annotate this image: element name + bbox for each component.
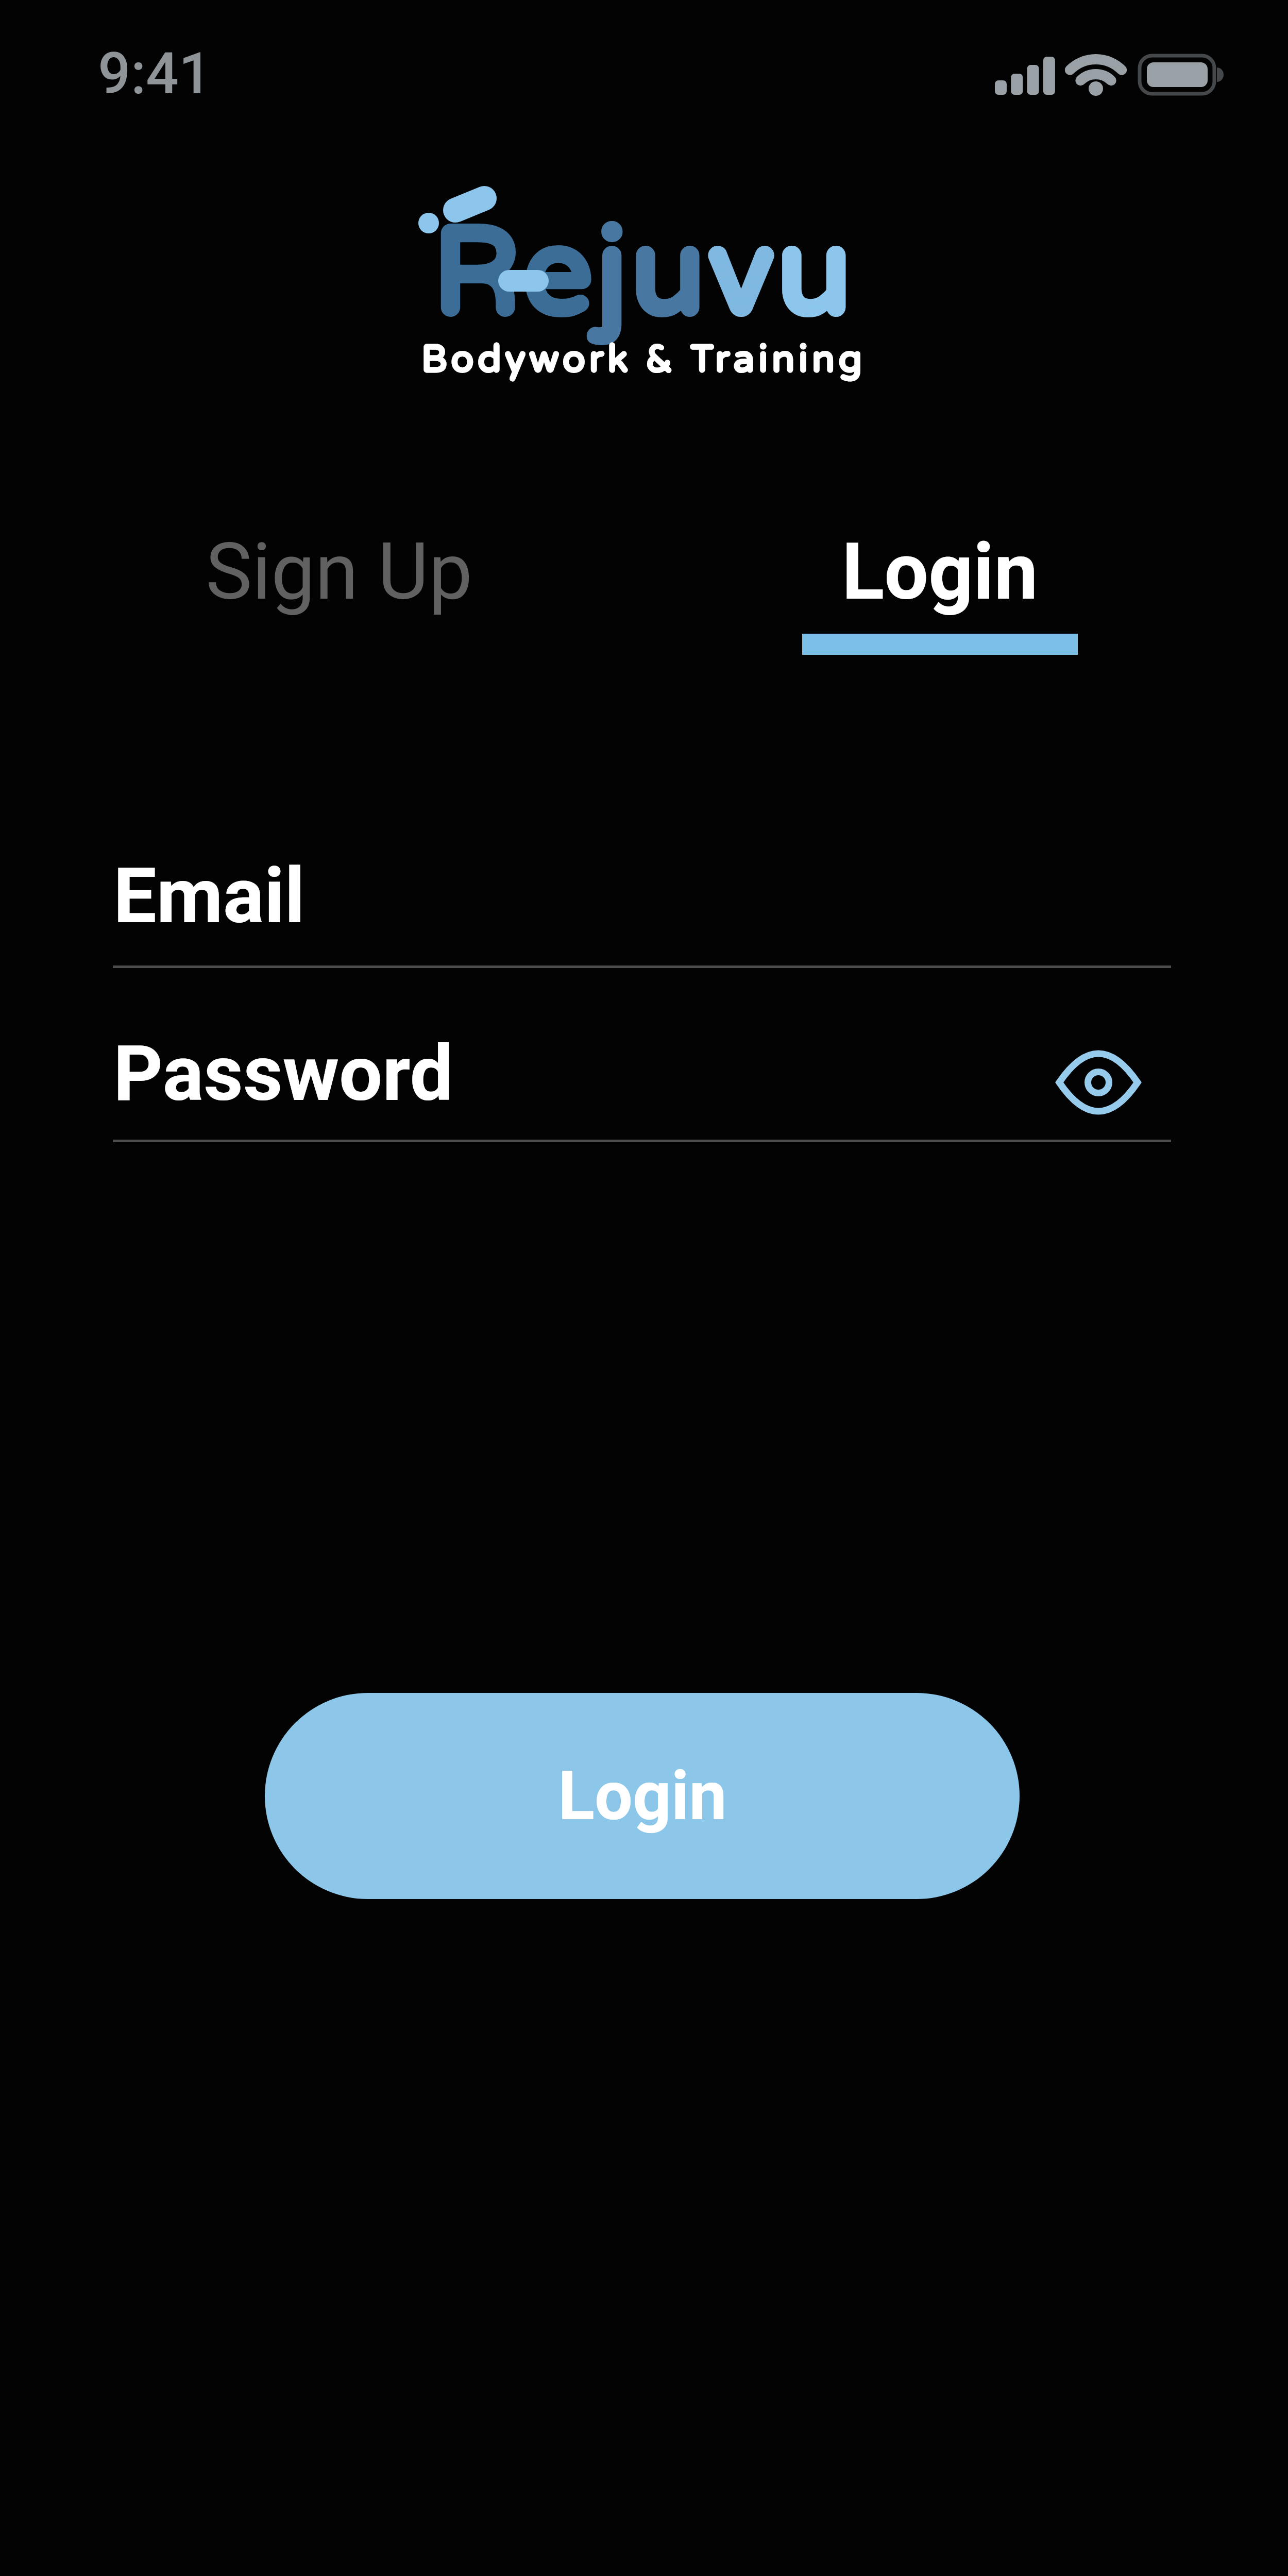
staticText: Rejuvu — [433, 201, 855, 347]
staticText: Login — [842, 526, 1038, 618]
button[interactable]: Login — [802, 515, 1078, 659]
staticText: Rejuvu — [433, 201, 855, 347]
staticText: Bodywork & Training — [421, 337, 867, 382]
staticText: Sign Up — [206, 526, 473, 618]
button[interactable]: Sign Up — [184, 515, 494, 629]
staticText: Password — [113, 1029, 453, 1119]
staticText: Login — [558, 1756, 727, 1836]
button[interactable]: Login — [265, 1693, 1020, 1899]
button[interactable] — [1046, 1041, 1149, 1123]
staticText: Bodywork & Training — [421, 337, 867, 382]
staticText: Email — [113, 851, 305, 941]
staticText: 9:41 — [98, 40, 212, 107]
